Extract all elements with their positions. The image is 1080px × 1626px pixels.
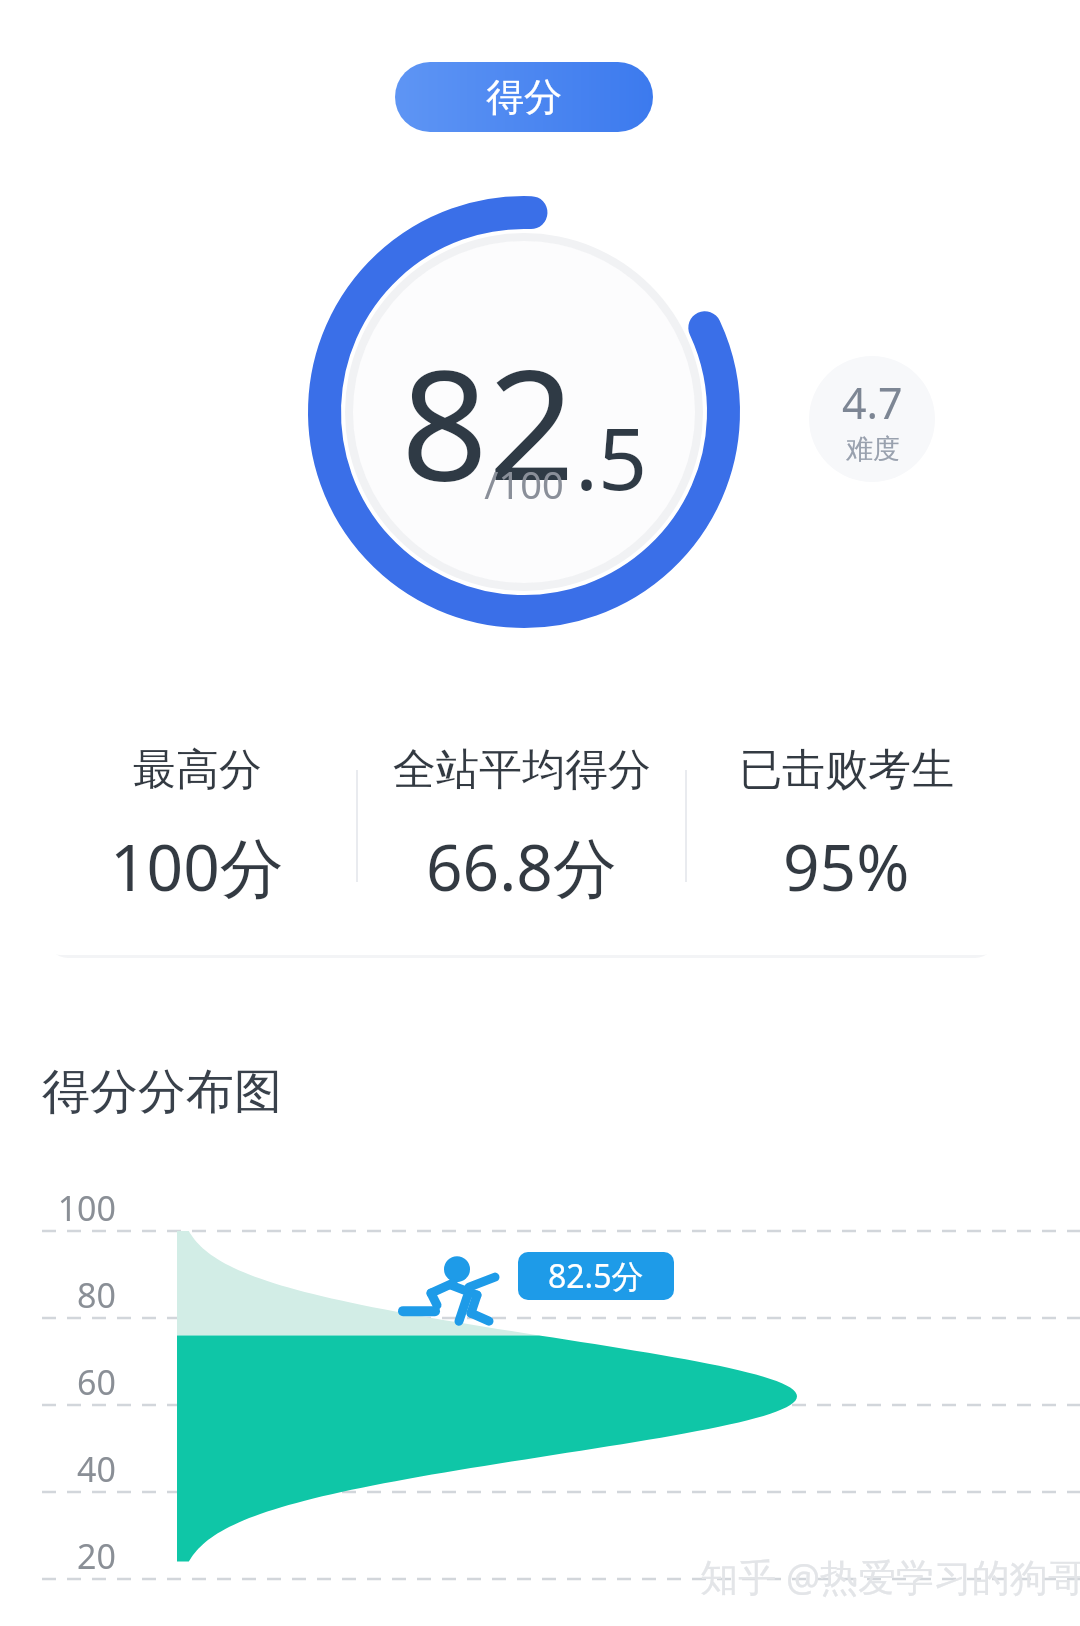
button[interactable]: 全站平均得分 (358, 697, 685, 955)
button[interactable]: 4.7 (809, 356, 935, 482)
staticText: 4.7 (842, 373, 903, 432)
staticText: 60 (20, 1359, 116, 1405)
staticText: 得分 (486, 73, 562, 121)
staticText: 95% (783, 823, 910, 910)
staticText: 82.5分 (548, 1254, 644, 1298)
staticText: /100 (306, 458, 742, 510)
staticText: 40 (20, 1446, 116, 1492)
staticText: .5 (575, 398, 648, 515)
staticText: 80 (20, 1272, 116, 1318)
staticText: 得分分布图 (42, 1062, 282, 1122)
button[interactable]: 最高分 (38, 697, 356, 955)
staticText: 20 (20, 1533, 116, 1579)
staticText: 知乎 @热爱学习的狗哥 (700, 1550, 1080, 1602)
staticText: 100分 (110, 823, 284, 910)
staticText: 已击败考生 (739, 743, 954, 797)
button[interactable]: 得分 (395, 62, 653, 132)
staticText: 全站平均得分 (393, 743, 651, 797)
staticText: 82 (401, 318, 575, 525)
staticText: 66.8分 (426, 823, 617, 910)
staticText: 最高分 (133, 743, 262, 797)
button[interactable]: 已击败考生 (687, 697, 1005, 955)
staticText: 难度 (846, 432, 900, 466)
button[interactable]: 82.5分 (518, 1252, 674, 1300)
staticText: 100 (20, 1185, 116, 1231)
